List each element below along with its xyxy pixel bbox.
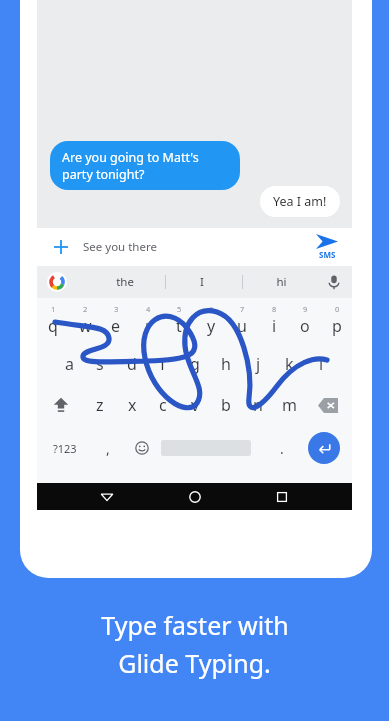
staticText: q (48, 315, 58, 337)
staticText: I (200, 274, 204, 290)
button[interactable]: c (147, 386, 179, 424)
button[interactable]: h (210, 345, 242, 383)
button[interactable]: 2 (69, 298, 101, 342)
button[interactable]: Are you going to Matt's party tonight? (50, 141, 240, 190)
button[interactable]: 5 (163, 298, 195, 342)
staticText: 5 (177, 304, 182, 314)
button[interactable]: x (116, 386, 148, 424)
staticText: SMS (319, 249, 336, 260)
staticText: . (280, 439, 284, 458)
button[interactable]: l (305, 345, 337, 383)
staticText: a (65, 353, 74, 375)
staticText: 0 (335, 304, 340, 314)
staticText: 6 (209, 304, 214, 314)
staticText: 9 (303, 304, 308, 314)
staticText: 7 (240, 304, 245, 314)
button[interactable]: I (184, 274, 220, 290)
button[interactable]: d (116, 345, 148, 383)
button[interactable]: g (179, 345, 211, 383)
staticText: j (256, 353, 261, 375)
staticText: y (207, 315, 216, 337)
button[interactable]: f (147, 345, 179, 383)
button[interactable]: 8 (258, 298, 290, 342)
button[interactable]: b (210, 386, 242, 424)
staticText: Yea I am! (273, 193, 327, 210)
staticText: 3 (114, 304, 119, 314)
staticText: the (116, 274, 134, 290)
button[interactable]: the (107, 274, 143, 290)
staticText: r (145, 315, 152, 337)
staticText: 2 (83, 304, 88, 314)
button[interactable]: m (273, 386, 305, 424)
staticText: 8 (272, 304, 277, 314)
staticText: d (127, 353, 137, 375)
staticText: ?123 (53, 441, 77, 456)
staticText: p (332, 315, 342, 337)
button[interactable]: 3 (100, 298, 132, 342)
staticText: k (285, 353, 294, 375)
staticText: Are you going to Matt's party tonight? (62, 149, 228, 182)
button[interactable]: n (242, 386, 274, 424)
button[interactable]: hi (263, 274, 299, 290)
button[interactable]: 1 (37, 298, 69, 342)
button[interactable]: Yea I am! (260, 186, 340, 217)
button[interactable]: a (53, 345, 85, 383)
button[interactable]: 4 (132, 298, 164, 342)
button[interactable]: k (273, 345, 305, 383)
button[interactable]: Enter (308, 432, 340, 464)
button[interactable]: 9 (289, 298, 321, 342)
staticText: t (176, 315, 182, 337)
staticText: n (253, 394, 263, 416)
button[interactable]: z (84, 386, 116, 424)
button[interactable]: Back (97, 487, 117, 507)
button[interactable]: Add attachment (49, 235, 73, 259)
staticText: 4 (146, 304, 151, 314)
button[interactable]: Voice input (326, 274, 342, 290)
button[interactable]: 6 (195, 298, 227, 342)
staticText: i (272, 315, 277, 337)
button[interactable]: Shift (41, 386, 81, 424)
staticText: Glide Typing. (118, 646, 271, 680)
button[interactable]: Emoji (127, 428, 157, 468)
staticText: See you there (83, 239, 157, 255)
button[interactable]: Home (185, 487, 205, 507)
staticText: s (96, 353, 104, 375)
button[interactable]: 0 (321, 298, 353, 342)
button[interactable]: Backspace (308, 386, 348, 424)
button[interactable]: . (267, 428, 297, 468)
staticText: , (106, 439, 110, 458)
staticText: c (159, 394, 167, 416)
button[interactable]: j (242, 345, 274, 383)
button[interactable]: s (84, 345, 116, 383)
staticText: g (190, 353, 200, 375)
staticText: v (191, 394, 200, 416)
staticText: h (221, 353, 231, 375)
button[interactable]: Send SMS (316, 234, 338, 260)
button[interactable]: v (179, 386, 211, 424)
staticText: b (221, 394, 231, 416)
staticText: Type faster with (101, 608, 289, 642)
staticText: 1 (51, 304, 56, 314)
button[interactable]: Google (47, 272, 67, 292)
staticText: o (300, 315, 310, 337)
staticText: m (282, 394, 297, 416)
button[interactable]: , (93, 428, 123, 468)
button[interactable]: ?123 (41, 428, 89, 468)
staticText: z (96, 394, 104, 416)
button[interactable]: Recents (272, 487, 292, 507)
staticText: u (237, 315, 247, 337)
staticText: f (160, 353, 166, 375)
staticText: x (128, 394, 137, 416)
staticText: l (319, 353, 324, 375)
staticText: hi (276, 274, 287, 290)
button[interactable]: 7 (226, 298, 258, 342)
staticText: w (79, 315, 92, 337)
staticText: e (111, 315, 121, 337)
